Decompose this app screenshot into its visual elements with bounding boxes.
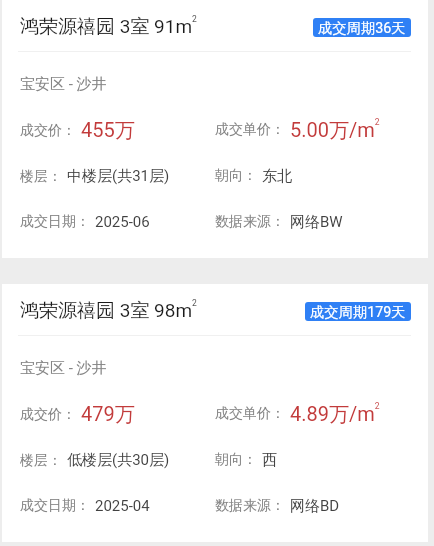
staticText: 低楼层(共30层) [67,451,170,470]
staticText: 成交日期： [20,497,90,515]
staticText: 4.89万/m2 [290,401,380,427]
staticText: 数据来源： [215,497,285,515]
button[interactable]: 成交周期36天 [313,18,411,37]
staticText: 2025-04 [95,497,150,515]
staticText: 成交价： [20,406,76,424]
staticText: 成交周期179天 [310,303,406,321]
staticText: 楼层： [20,452,62,470]
staticText: 宝安区 - 沙井 [20,359,107,378]
staticText: 宝安区 - 沙井 [20,75,107,94]
staticText: 中楼层(共31层) [67,167,170,186]
staticText: 鸿荣源禧园 3室 91m2 [20,14,197,38]
staticText: 数据来源： [215,213,285,231]
staticText: 5.00万/m2 [290,117,380,143]
staticText: 朝向： [215,167,257,185]
staticText: 2025-06 [95,213,150,231]
staticText: 鸿荣源禧园 3室 98m2 [20,298,197,322]
staticText: 网络BD [290,497,340,516]
staticText: 成交单价： [215,405,285,423]
staticText: 455万 [81,118,135,143]
staticText: 成交价： [20,122,76,140]
staticText: 成交单价： [215,121,285,139]
button[interactable]: 成交周期179天 [305,302,411,321]
staticText: 楼层： [20,168,62,186]
staticText: 479万 [81,402,135,427]
staticText: 网络BW [290,213,343,232]
staticText: 朝向： [215,451,257,469]
staticText: 成交日期： [20,213,90,231]
button[interactable]: 鸿荣源禧园 3室 98m2 [2,284,428,542]
staticText: 东北 [262,167,292,186]
button[interactable]: 鸿荣源禧园 3室 91m2 [2,0,428,258]
staticText: 西 [262,451,277,470]
staticText: 成交周期36天 [318,19,406,37]
